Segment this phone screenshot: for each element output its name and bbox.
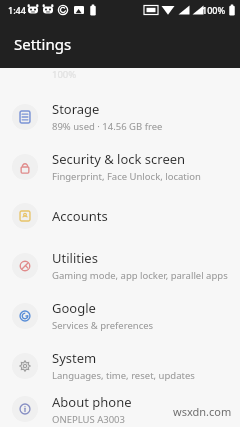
staticText: 100% (52, 68, 77, 78)
button[interactable]: System (0, 341, 240, 390)
staticText: Storage (52, 100, 100, 118)
staticText: 100% (202, 4, 226, 16)
staticText: About phone (52, 393, 132, 411)
staticText: Utilities (52, 249, 98, 267)
staticText: Accounts (52, 207, 108, 225)
staticText: Gaming mode, app locker, parallel apps (52, 269, 228, 282)
staticText: wsxdn.com (173, 404, 232, 419)
staticText: ONEPLUS A3003 (52, 413, 125, 426)
button[interactable]: Google (0, 291, 240, 340)
staticText: Security & lock screen (52, 150, 186, 168)
staticText: Settings (14, 34, 72, 54)
staticText: Languages, time, reset, updates (52, 369, 195, 382)
staticText: Google (52, 299, 96, 317)
button[interactable]: Utilities (0, 241, 240, 290)
staticText: 89% used · 14.56 GB free (52, 120, 163, 133)
button[interactable]: About phone (0, 391, 240, 427)
staticText: Services & preferences (52, 319, 154, 332)
staticText: System (52, 349, 97, 367)
button[interactable]: Security & lock screen (0, 142, 240, 191)
staticText: Fingerprint, Face Unlock, location (52, 170, 201, 183)
button[interactable]: Storage (0, 92, 240, 141)
button[interactable]: Accounts (0, 192, 240, 240)
staticText: 1:44 (8, 4, 26, 16)
